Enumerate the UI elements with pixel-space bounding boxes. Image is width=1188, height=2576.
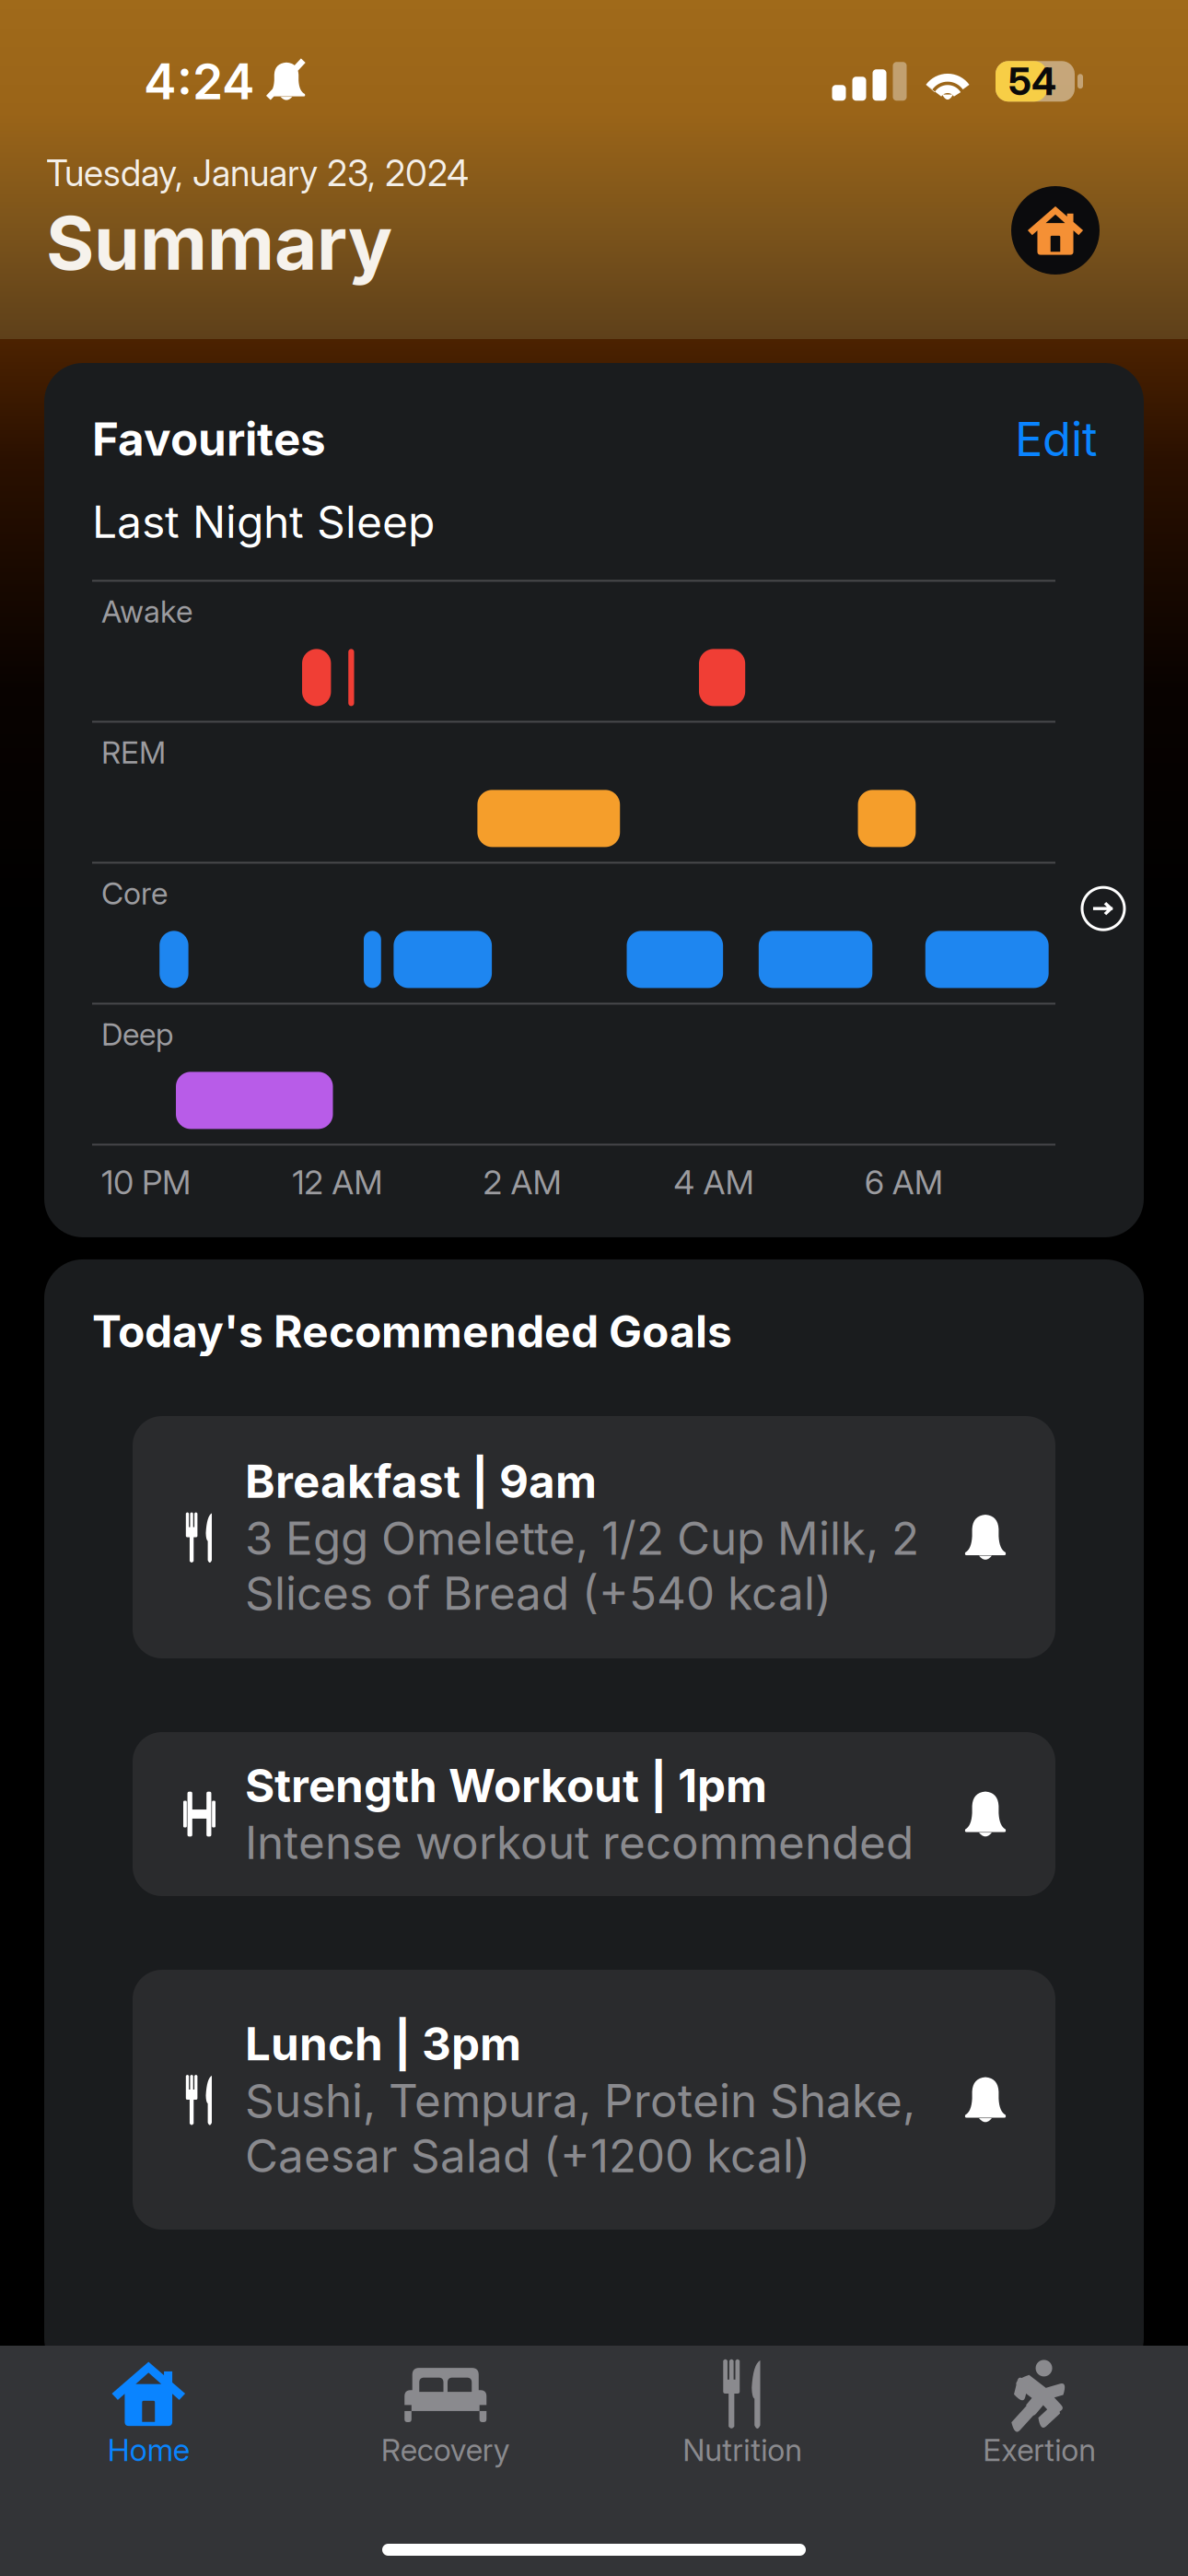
- staticText: Summary: [46, 198, 392, 287]
- staticText: Nutrition: [683, 2431, 802, 2468]
- staticText: Core: [101, 875, 168, 912]
- staticText: 2 AM: [483, 1162, 561, 1202]
- staticText: Exertion: [983, 2431, 1096, 2468]
- button[interactable]: Open sleep details: [1076, 881, 1131, 936]
- staticText: Today's Recommended Goals: [92, 1304, 732, 1358]
- staticText: Edit: [1015, 411, 1098, 467]
- staticText: Recovery: [381, 2431, 510, 2468]
- staticText: Strength Workout | 1pm: [245, 1758, 767, 1813]
- button[interactable]: Breakfast | 9am: [133, 1416, 1055, 1658]
- button[interactable]: Home: [0, 2346, 297, 2480]
- staticText: Lunch | 3pm: [245, 2016, 521, 2071]
- button[interactable]: Home: [1011, 186, 1100, 275]
- staticText: 6 AM: [865, 1162, 943, 1202]
- staticText: 4 AM: [674, 1162, 754, 1202]
- button[interactable]: Strength Workout | 1pm: [133, 1732, 1055, 1896]
- staticText: 4:24: [144, 52, 255, 111]
- staticText: Deep: [101, 1016, 173, 1053]
- button[interactable]: Nutrition: [594, 2346, 891, 2480]
- staticText: 10 PM: [101, 1162, 191, 1202]
- button[interactable]: Recovery: [297, 2346, 594, 2480]
- button[interactable]: Edit: [1015, 411, 1098, 467]
- staticText: Intense workout recommended: [245, 1815, 914, 1870]
- button[interactable]: Exertion: [891, 2346, 1188, 2480]
- staticText: Breakfast | 9am: [245, 1454, 597, 1509]
- staticText: Home: [108, 2431, 190, 2468]
- staticText: 3 Egg Omelette, 1/2 Cup Milk, 2 Slices o…: [245, 1511, 919, 1621]
- button[interactable]: Lunch | 3pm: [133, 1970, 1055, 2230]
- staticText: Awake: [101, 593, 192, 630]
- staticText: REM: [101, 734, 166, 771]
- staticText: Last Night Sleep: [92, 495, 435, 549]
- staticText: 54: [1008, 58, 1056, 104]
- staticText: Favourites: [92, 412, 326, 467]
- staticText: Tuesday, January 23, 2024: [46, 151, 469, 195]
- staticText: Sushi, Tempura, Protein Shake, Caesar Sa…: [245, 2073, 915, 2183]
- staticText: 12 AM: [292, 1162, 382, 1202]
